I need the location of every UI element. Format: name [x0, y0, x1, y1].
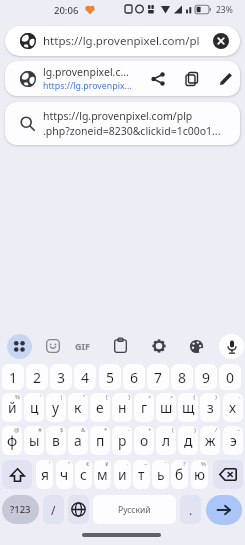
staticText: а [74, 431, 82, 450]
staticText: 0 [226, 368, 235, 387]
staticText: в [52, 431, 60, 450]
button[interactable]: / [43, 495, 64, 524]
staticText: https://lg.provenpixel.com/plp [43, 109, 193, 123]
button[interactable]: з [200, 393, 220, 422]
staticText: ~ [237, 426, 241, 434]
button[interactable]: 2 [26, 364, 48, 390]
button[interactable] [7, 334, 32, 359]
staticText: ж [205, 431, 216, 450]
button[interactable] [68, 495, 89, 524]
button[interactable]: х [223, 393, 243, 422]
button[interactable]: 8 [171, 364, 193, 390]
button[interactable]: 6 [123, 364, 145, 390]
button[interactable]: э [223, 426, 243, 455]
staticText: . [189, 502, 193, 518]
button[interactable]: ч [56, 460, 73, 489]
button[interactable]: а [68, 426, 88, 455]
button[interactable]: т [133, 460, 150, 489]
button[interactable]: Русский [93, 495, 176, 524]
button[interactable]: ф [2, 426, 22, 455]
staticText: 23% [216, 4, 233, 16]
button[interactable]: щ [178, 393, 198, 422]
button[interactable]: lg.provenpixel.c... [5, 61, 240, 96]
button[interactable] [189, 339, 204, 354]
staticText: 5 [106, 368, 115, 387]
staticText: ' [49, 460, 51, 468]
button[interactable]: о [134, 426, 154, 455]
button[interactable]: 0 [219, 364, 241, 390]
staticText: | [60, 393, 64, 401]
button[interactable]: й [2, 393, 22, 422]
button[interactable]: ш [156, 393, 176, 422]
staticText: ' [40, 393, 42, 401]
staticText: · [127, 460, 129, 468]
staticText: ф [7, 431, 18, 450]
button[interactable]: https://lg.provenpixel.com/pl [5, 26, 240, 56]
button[interactable]: е [90, 393, 110, 422]
button[interactable] [46, 339, 60, 353]
button[interactable]: в [46, 426, 66, 455]
button[interactable]: м [94, 460, 111, 489]
button[interactable] [114, 338, 127, 354]
button[interactable]: у [46, 393, 66, 422]
button[interactable]: ь [152, 460, 169, 489]
button[interactable] [151, 72, 165, 86]
staticText: ) [194, 426, 196, 434]
button[interactable] [219, 72, 233, 86]
staticText: ` [165, 460, 167, 468]
button[interactable]: 7 [147, 364, 169, 390]
button[interactable] [185, 72, 199, 86]
button[interactable] [219, 334, 244, 359]
staticText: @ [14, 426, 20, 434]
button[interactable]: https://lg.provenpixel.com/plp [5, 102, 240, 145]
button[interactable]: ц [24, 393, 44, 422]
button[interactable]: ы [24, 426, 44, 455]
staticText: 9 [202, 368, 211, 387]
button[interactable]: п [90, 426, 110, 455]
staticText: / [51, 502, 56, 518]
staticText: .php?zoneid=8230&clickid=1c00o1... [43, 124, 221, 138]
button[interactable]: л [156, 426, 176, 455]
button[interactable]: ж [200, 426, 220, 455]
button[interactable]: д [178, 426, 198, 455]
button[interactable]: 9 [195, 364, 217, 390]
staticText: д [184, 431, 193, 450]
button[interactable]: р [112, 426, 132, 455]
button[interactable] [2, 460, 32, 489]
button[interactable]: 5 [99, 364, 121, 390]
staticText: · [239, 393, 241, 401]
staticText: ю [194, 465, 206, 484]
button[interactable]: 3 [50, 364, 72, 390]
staticText: н [118, 398, 127, 417]
button[interactable] [152, 339, 167, 354]
button[interactable]: и [114, 460, 131, 489]
staticText: т [138, 465, 145, 484]
staticText: + [148, 426, 152, 434]
staticText: 2 [33, 368, 42, 387]
button[interactable]: я [36, 460, 53, 489]
staticText: х [229, 398, 237, 417]
staticText: ш [160, 398, 173, 417]
button[interactable]: ?123 [2, 495, 39, 524]
button[interactable] [213, 460, 243, 489]
button[interactable]: 1 [2, 364, 24, 390]
button[interactable]: GIF [71, 334, 93, 358]
button[interactable]: с [75, 460, 92, 489]
staticText: & [81, 426, 86, 434]
button[interactable]: н [112, 393, 132, 422]
staticText: " [83, 393, 86, 401]
button[interactable]: б [171, 460, 188, 489]
staticText: м [97, 465, 108, 484]
button[interactable]: к [68, 393, 88, 422]
staticText: % [201, 460, 206, 468]
button[interactable]: 4 [74, 364, 96, 390]
button[interactable] [206, 495, 242, 525]
staticText: я [41, 465, 49, 484]
staticText: * [104, 426, 108, 434]
staticText: ь [157, 465, 165, 484]
staticText: й [8, 398, 17, 417]
staticText: п [96, 431, 105, 450]
button[interactable]: . [180, 495, 201, 524]
button[interactable]: г [134, 393, 154, 422]
button[interactable]: ю [191, 460, 208, 489]
